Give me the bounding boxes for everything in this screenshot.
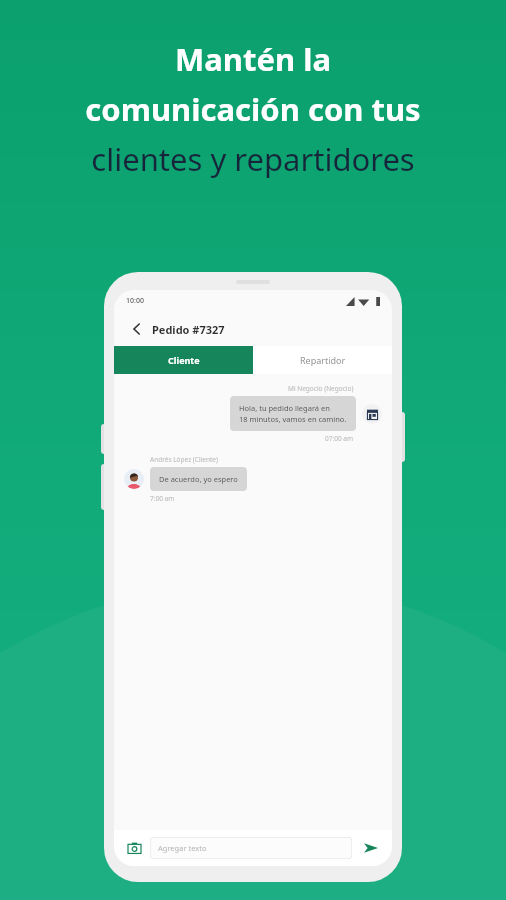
staticText: 7:00 am [150, 494, 175, 503]
staticText: clientes y repartidores [91, 138, 415, 180]
staticText: Mantén la [175, 38, 331, 80]
staticText: Pedido #7327 [152, 322, 225, 337]
staticText: Hola, tu pedido llegará en 18 minutos, v… [239, 403, 347, 424]
staticText: Cliente [168, 354, 200, 366]
button[interactable]: Send [360, 837, 382, 859]
staticText: Repartidor [300, 354, 346, 366]
button[interactable]: Back [126, 318, 148, 340]
staticText: Andrés López (Cliente) [150, 455, 218, 464]
button[interactable]: Repartidor [253, 346, 392, 374]
staticText: Mi Negocio (Negocio) [288, 384, 354, 393]
staticText: comunicación con tus [85, 88, 421, 130]
staticText: Agregar texto [158, 843, 207, 853]
staticText: De acuerdo, yo espero [159, 474, 238, 484]
staticText: 07:00 am [325, 434, 354, 443]
staticText: 10:00 [126, 296, 144, 306]
button[interactable]: Agregar texto [150, 837, 352, 859]
button[interactable]: Cliente [114, 346, 253, 374]
button[interactable]: Add photo [124, 838, 144, 858]
